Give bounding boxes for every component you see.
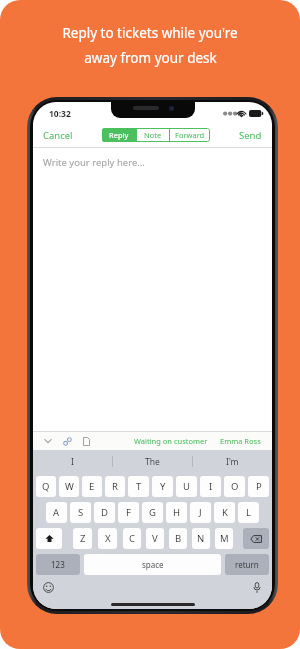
button[interactable]: K xyxy=(214,502,235,523)
button[interactable]: S xyxy=(70,502,91,523)
staticText: return xyxy=(235,559,259,570)
staticText: Send xyxy=(239,129,262,142)
button[interactable]: Send xyxy=(229,126,272,145)
staticText: W xyxy=(65,480,74,493)
staticText: A xyxy=(53,506,60,519)
button[interactable]: Z xyxy=(73,528,92,549)
button[interactable]: J xyxy=(190,502,211,523)
staticText: Q xyxy=(42,480,50,493)
button[interactable]: F xyxy=(118,502,139,523)
staticText: away from your desk xyxy=(84,49,217,67)
button[interactable]: T xyxy=(128,476,149,497)
staticText: I xyxy=(209,480,213,493)
staticText: D xyxy=(101,506,108,519)
staticText: H xyxy=(173,506,181,519)
staticText: Reply xyxy=(109,130,129,140)
button[interactable]: Emma Ross xyxy=(217,434,264,448)
button[interactable]: Cancel xyxy=(33,126,83,145)
staticText: K xyxy=(222,506,228,519)
staticText: X xyxy=(105,532,111,545)
staticText: Y xyxy=(160,480,166,493)
staticText: 10:32 xyxy=(49,108,71,120)
button[interactable]: Shift xyxy=(36,528,62,549)
staticText: Note xyxy=(144,130,162,140)
button[interactable]: Reply xyxy=(102,128,136,142)
staticText: Reply to tickets while you're xyxy=(62,24,238,42)
button[interactable]: N xyxy=(192,528,210,549)
button[interactable]: Note xyxy=(137,128,169,142)
button[interactable]: The xyxy=(113,450,192,473)
button[interactable]: Dictate xyxy=(249,579,265,595)
staticText: I xyxy=(71,456,74,468)
staticText: Forward xyxy=(175,130,205,140)
staticText: P xyxy=(256,480,262,493)
staticText: O xyxy=(231,480,239,493)
staticText: F xyxy=(126,506,131,519)
staticText: S xyxy=(78,506,84,519)
button[interactable]: D xyxy=(94,502,115,523)
button[interactable]: return xyxy=(225,554,269,575)
button[interactable]: Backspace xyxy=(243,528,269,549)
staticText: C xyxy=(129,532,136,545)
staticText: Waiting on customer xyxy=(134,436,208,446)
staticText: R xyxy=(112,480,118,493)
staticText: U xyxy=(183,480,190,493)
button[interactable]: X xyxy=(98,528,117,549)
button[interactable]: I'm xyxy=(193,450,272,473)
button[interactable]: G xyxy=(142,502,163,523)
button[interactable]: P xyxy=(248,476,269,497)
staticText: T xyxy=(136,480,142,493)
button[interactable]: space xyxy=(84,554,221,575)
button[interactable]: Attach file xyxy=(79,434,93,448)
staticText: Write your reply here... xyxy=(43,156,145,169)
button[interactable]: Waiting on customer xyxy=(131,434,211,448)
staticText: V xyxy=(152,532,158,545)
button[interactable]: I xyxy=(33,450,112,473)
button[interactable]: W xyxy=(59,476,79,497)
button[interactable]: 123 xyxy=(36,554,80,575)
button[interactable]: Attach link xyxy=(60,434,74,448)
staticText: M xyxy=(220,532,229,545)
button[interactable]: L xyxy=(238,502,259,523)
button[interactable]: M xyxy=(215,528,233,549)
button[interactable]: Y xyxy=(152,476,173,497)
staticText: Z xyxy=(80,532,86,545)
staticText: Cancel xyxy=(43,129,73,142)
button[interactable]: E xyxy=(82,476,102,497)
staticText: G xyxy=(149,506,156,519)
staticText: J xyxy=(199,506,202,519)
button[interactable]: V xyxy=(146,528,164,549)
button[interactable]: Emoji xyxy=(40,579,56,595)
button[interactable]: H xyxy=(166,502,187,523)
staticText: Emma Ross xyxy=(220,436,261,446)
staticText: space xyxy=(142,559,164,570)
staticText: E xyxy=(89,480,95,493)
button[interactable]: C xyxy=(123,528,141,549)
button[interactable]: B xyxy=(169,528,187,549)
button[interactable]: Forward xyxy=(170,128,210,142)
button[interactable]: Collapse xyxy=(41,434,55,448)
staticText: N xyxy=(197,532,205,545)
button[interactable]: Q xyxy=(36,476,56,497)
staticText: B xyxy=(175,532,182,545)
staticText: L xyxy=(246,506,251,519)
button[interactable]: O xyxy=(224,476,245,497)
staticText: I'm xyxy=(226,456,239,468)
button[interactable]: R xyxy=(105,476,125,497)
staticText: 123 xyxy=(51,559,65,570)
button[interactable]: I xyxy=(200,476,221,497)
staticText: The xyxy=(145,456,160,468)
button[interactable]: U xyxy=(176,476,197,497)
button[interactable]: A xyxy=(46,502,67,523)
